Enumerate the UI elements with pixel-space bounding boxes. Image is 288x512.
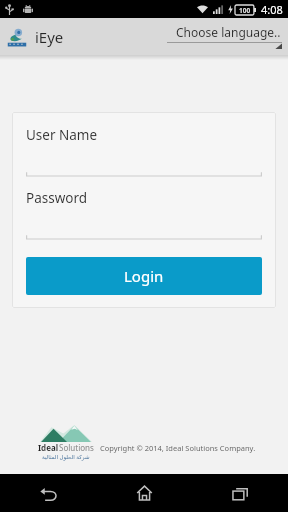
staticText: Login — [124, 266, 164, 286]
button[interactable]: iEye — [6, 26, 64, 48]
staticText: 100 — [239, 6, 251, 15]
button[interactable]: Choose language.. — [167, 24, 282, 49]
button[interactable]: Back — [0, 474, 96, 512]
staticText: Choose language.. — [176, 24, 281, 40]
staticText: 4:08 — [261, 2, 283, 17]
staticText: Ideal — [38, 442, 59, 453]
button[interactable]: Login — [26, 257, 262, 295]
staticText: شركة الحلول المثالية — [42, 453, 90, 460]
staticText: iEye — [35, 27, 64, 47]
button[interactable]: Password — [26, 189, 262, 207]
button[interactable]: User Name — [26, 126, 262, 144]
staticText: Copyright © 2014, Ideal Solutions Compan… — [100, 443, 256, 453]
button[interactable]: Recent apps — [192, 474, 288, 512]
staticText: Solutions — [59, 442, 94, 453]
button[interactable]: Home — [96, 474, 192, 512]
